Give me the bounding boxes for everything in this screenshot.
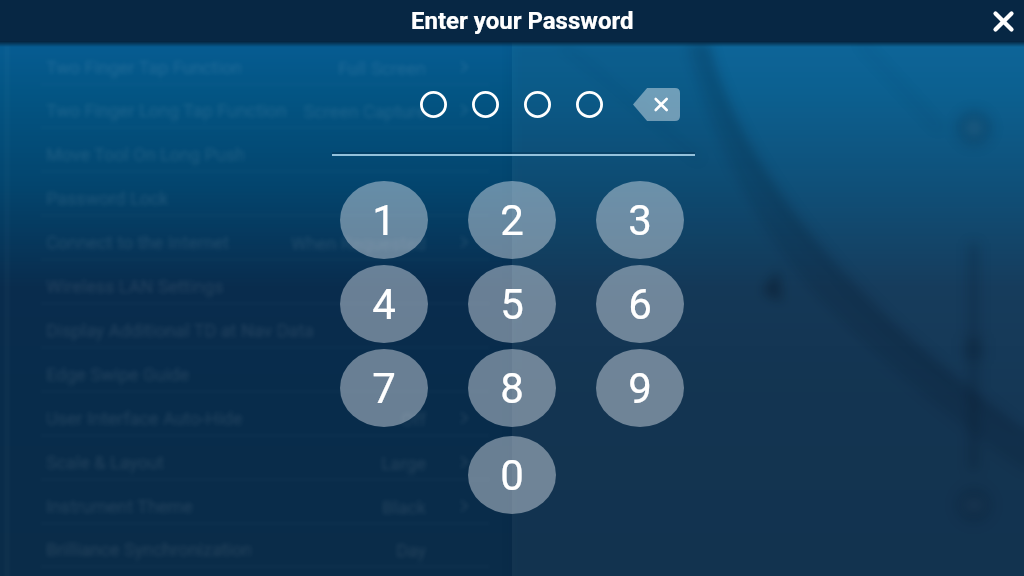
button[interactable]: Backspace (633, 88, 680, 121)
staticText: Two Finger Tap Function (46, 57, 243, 78)
staticText: Brilliance Synchronization (46, 539, 253, 560)
button[interactable]: User Interface Auto-Hide (46, 406, 486, 430)
staticText: Display Additional TD at Nav Data (46, 320, 314, 341)
button[interactable]: 9 (596, 349, 684, 427)
button[interactable]: 3 (596, 181, 684, 259)
staticText: Connect to the Internet (46, 232, 230, 253)
staticText: 9 (628, 364, 652, 413)
button[interactable]: Brilliance Synchronization (46, 537, 486, 561)
staticText: Password Lock (46, 188, 169, 209)
button[interactable]: Display Additional TD at Nav Data (46, 318, 486, 342)
staticText: Screen Capture (303, 101, 426, 122)
button[interactable]: Connect to the Internet (46, 230, 486, 254)
staticText: 7 (372, 364, 396, 413)
staticText: 5 (500, 280, 524, 329)
staticText: 8 (500, 364, 524, 413)
staticText: Move Tool On Long Push (46, 144, 246, 165)
button[interactable]: 7 (340, 349, 428, 427)
staticText: When Requested (290, 233, 426, 254)
button[interactable]: Wireless LAN Settings (46, 274, 486, 298)
button[interactable]: Move Tool On Long Push (46, 142, 486, 166)
button[interactable]: 1 (340, 181, 428, 259)
staticText: 4 (372, 280, 396, 329)
button[interactable]: 2 (468, 181, 556, 259)
staticText: Full Screen (338, 58, 426, 79)
staticText: 1 (372, 196, 396, 245)
staticText: 6 (628, 280, 652, 329)
staticText: Scale & Layout (46, 452, 164, 473)
staticText: Wireless LAN Settings (46, 276, 224, 297)
staticText: 0 (500, 451, 524, 500)
button[interactable]: Two Finger Long Tap Function (46, 98, 486, 122)
button[interactable]: 5 (468, 265, 556, 343)
staticText: Off (401, 409, 426, 430)
button[interactable]: Edge Swipe Guide (46, 362, 486, 386)
button[interactable]: Scale & Layout (46, 450, 486, 474)
button[interactable]: Password Lock (46, 186, 486, 210)
staticText: Instrument Theme (46, 496, 193, 517)
button[interactable]: 8 (468, 349, 556, 427)
staticText: Day (396, 540, 426, 561)
button[interactable]: Two Finger Tap Function (46, 55, 486, 79)
staticText: Two Finger Long Tap Function (46, 100, 287, 121)
button[interactable]: 6 (596, 265, 684, 343)
staticText: Edge Swipe Guide (46, 364, 190, 385)
staticText: Enter your Password (411, 7, 634, 35)
button[interactable]: Instrument Theme (46, 494, 486, 518)
staticText: User Interface Auto-Hide (46, 408, 243, 429)
staticText: Black (382, 497, 426, 518)
staticText: 2 (500, 196, 524, 245)
staticText: 3 (628, 196, 652, 245)
button[interactable]: 4 (340, 265, 428, 343)
button[interactable]: Close (982, 0, 1024, 42)
staticText: Large (380, 453, 426, 474)
button[interactable]: 0 (468, 436, 556, 514)
